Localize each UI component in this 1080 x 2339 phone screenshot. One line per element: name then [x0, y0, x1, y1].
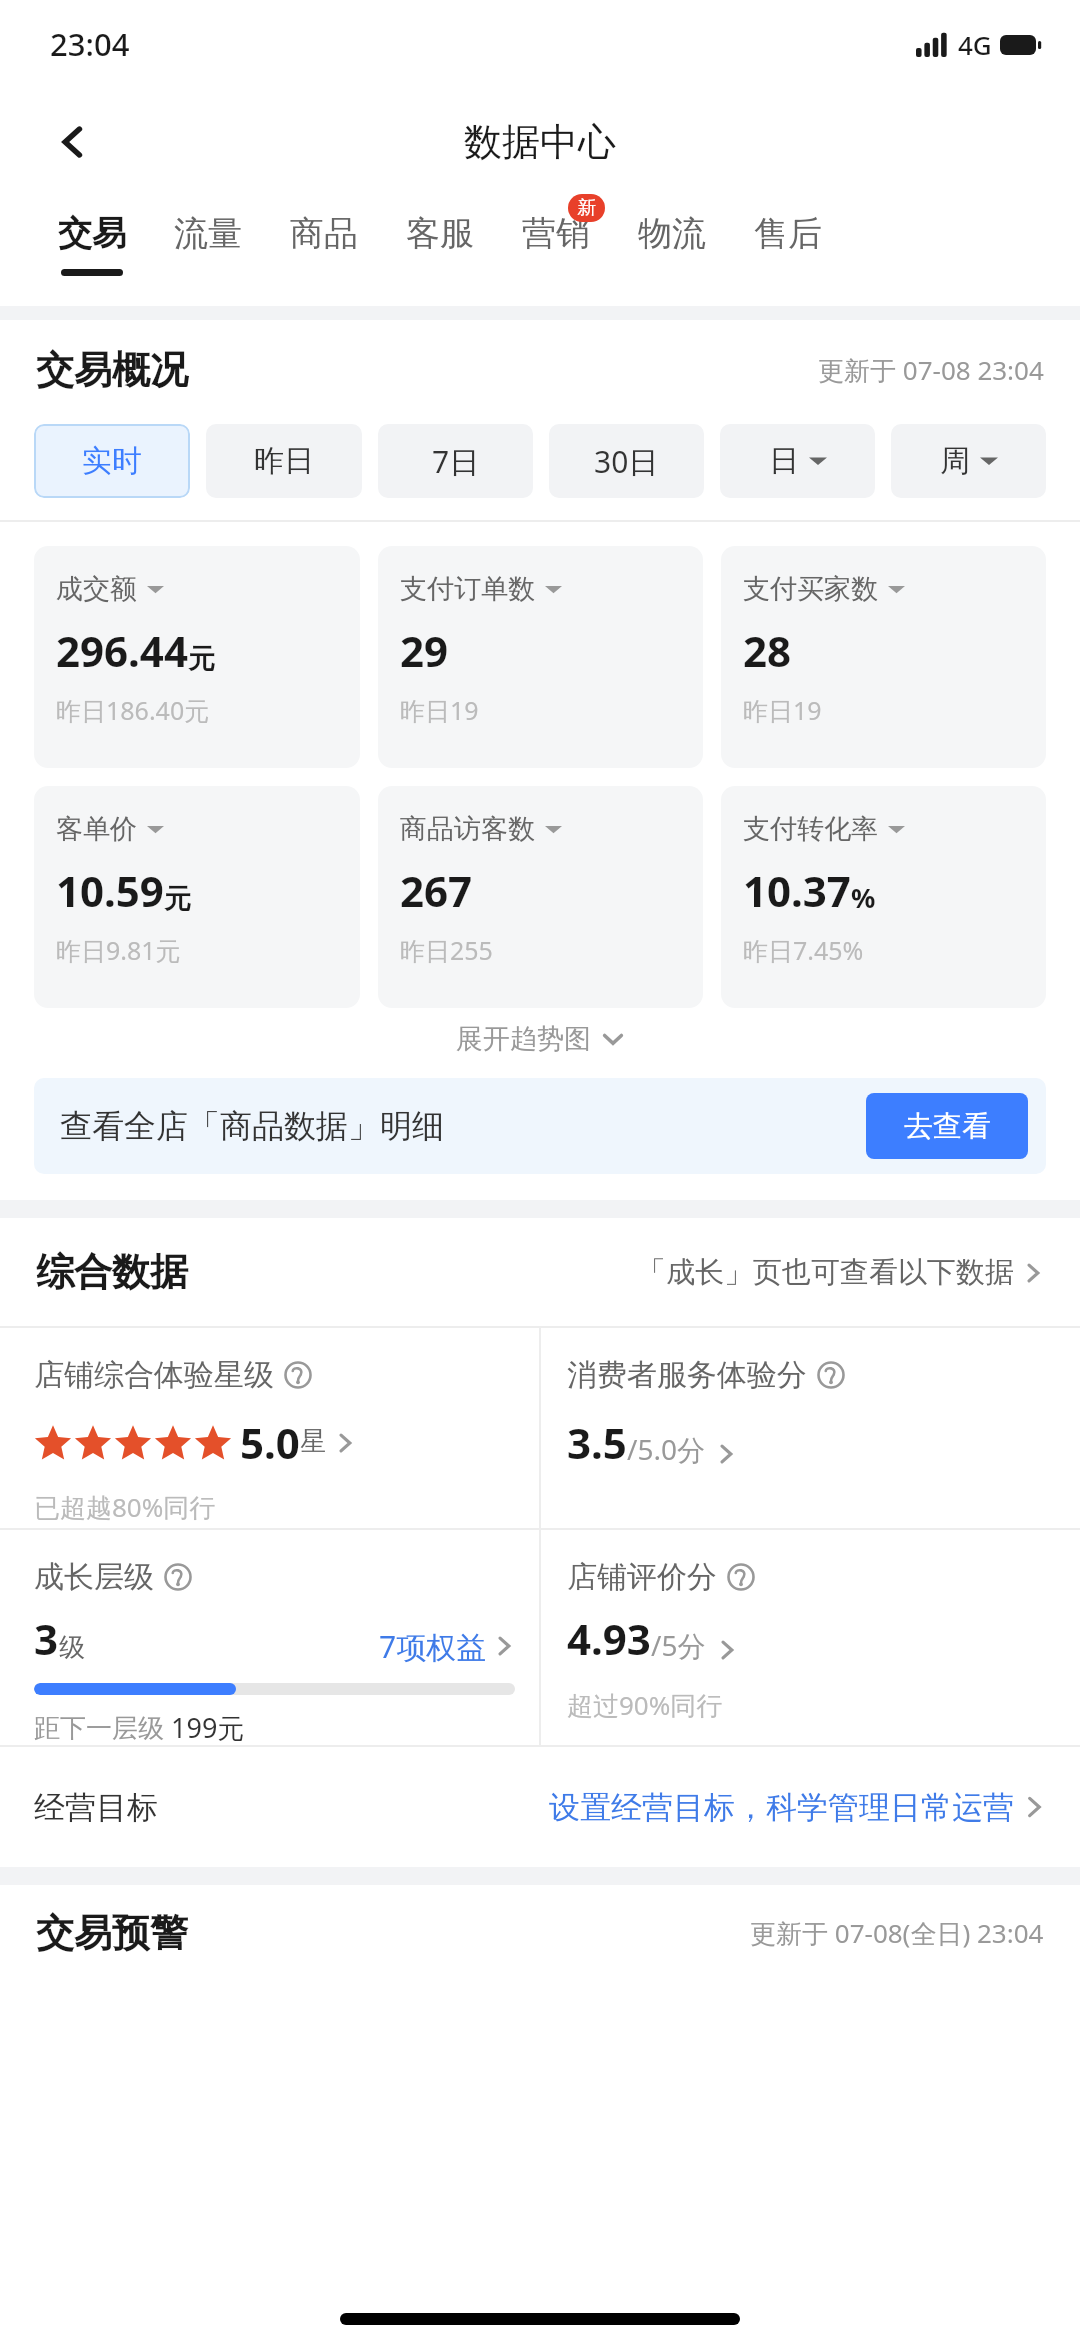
staticText: 昨日255: [400, 933, 493, 967]
button[interactable]: 商品: [266, 196, 382, 306]
staticText: 296.44: [56, 622, 188, 679]
button[interactable]: 消费者服务体验分: [541, 1328, 1080, 1528]
button[interactable]: 昨日: [206, 424, 362, 498]
staticText: 5.0: [240, 1414, 300, 1471]
staticText: 商品访客数: [400, 812, 535, 846]
staticText: 店铺综合体验星级: [34, 1356, 274, 1394]
staticText: 客单价: [56, 812, 137, 846]
staticText: 成长层级: [34, 1558, 154, 1596]
button[interactable]: 经营目标: [0, 1747, 1080, 1867]
staticText: 昨日19: [400, 693, 479, 727]
staticText: 7日: [432, 441, 480, 482]
button[interactable]: 成长层级: [0, 1530, 539, 1745]
staticText: 昨日186.40元: [56, 693, 210, 727]
staticText: 28: [743, 622, 792, 679]
staticText: 日: [769, 442, 799, 480]
button[interactable]: 支付订单数: [378, 546, 703, 768]
button[interactable]: 30日: [549, 424, 704, 498]
button[interactable]: 交易: [34, 196, 150, 306]
staticText: 查看全店「商品数据」明细: [60, 1106, 444, 1146]
staticText: 设置经营目标，科学管理日常运营: [549, 1788, 1014, 1827]
staticText: 去查看: [904, 1108, 991, 1145]
staticText: 昨日: [254, 442, 314, 480]
button[interactable]: 客服: [382, 196, 498, 306]
staticText: 267: [400, 862, 473, 919]
button[interactable]: 「成长」页也可查看以下数据: [637, 1254, 1044, 1291]
staticText: 更新于 07-08(全日) 23:04: [750, 1915, 1044, 1951]
staticText: %: [851, 879, 876, 916]
staticText: 3: [34, 1610, 59, 1667]
button[interactable]: 店铺综合体验星级: [0, 1328, 539, 1528]
staticText: 29: [400, 622, 449, 679]
staticText: 10.37: [743, 862, 851, 919]
staticText: 昨日7.45%: [743, 933, 864, 967]
staticText: 昨日19: [743, 693, 822, 727]
button[interactable]: 7项权益: [379, 1626, 515, 1667]
staticText: 新: [577, 196, 596, 220]
staticText: 昨日9.81元: [56, 933, 181, 967]
button[interactable]: 支付转化率: [721, 786, 1046, 1008]
staticText: 更新于 07-08 23:04: [818, 352, 1044, 388]
button[interactable]: 日: [720, 424, 875, 498]
staticText: 元: [164, 882, 191, 916]
staticText: 消费者服务体验分: [567, 1356, 807, 1394]
staticText: 支付订单数: [400, 572, 535, 606]
button[interactable]: 支付买家数: [721, 546, 1046, 768]
button[interactable]: 客单价: [34, 786, 360, 1008]
staticText: 客服: [406, 212, 474, 255]
staticText: 超过90%同行: [567, 1687, 723, 1723]
button[interactable]: 流量: [150, 196, 266, 306]
staticText: 交易预警: [36, 1909, 188, 1957]
button[interactable]: 售后: [730, 196, 846, 306]
staticText: 展开趋势图: [456, 1022, 591, 1056]
staticText: 数据中心: [464, 118, 616, 166]
staticText: 实时: [82, 442, 142, 480]
staticText: 流量: [174, 212, 242, 255]
staticText: 「成长」页也可查看以下数据: [637, 1254, 1014, 1291]
staticText: 10.59: [56, 862, 164, 919]
staticText: 成交额: [56, 572, 137, 606]
button[interactable]: 去查看: [866, 1093, 1028, 1159]
staticText: 星: [300, 1425, 326, 1458]
button[interactable]: 营销: [498, 196, 614, 306]
button[interactable]: 商品访客数: [378, 786, 703, 1008]
staticText: 30日: [594, 441, 659, 482]
staticText: 交易概况: [36, 346, 188, 394]
staticText: 已超越80%同行: [34, 1489, 216, 1525]
staticText: 4G: [958, 27, 992, 62]
button[interactable]: 物流: [614, 196, 730, 306]
staticText: 级: [59, 1631, 85, 1664]
staticText: 周: [940, 442, 970, 480]
staticText: 营销: [522, 212, 590, 255]
button[interactable]: 周: [891, 424, 1046, 498]
staticText: 售后: [754, 212, 822, 255]
button[interactable]: 成交额: [34, 546, 360, 768]
button[interactable]: 展开趋势图: [0, 1022, 1080, 1056]
staticText: 物流: [638, 212, 706, 255]
staticText: 4.93: [567, 1610, 651, 1667]
staticText: 支付买家数: [743, 572, 878, 606]
staticText: 交易: [58, 212, 126, 255]
button[interactable]: 实时: [34, 424, 190, 498]
staticText: 店铺评价分: [567, 1558, 717, 1596]
staticText: 3.5: [567, 1414, 627, 1471]
staticText: /5.0分: [627, 1430, 705, 1468]
button[interactable]: 查看全店「商品数据」明细: [34, 1078, 1046, 1174]
staticText: 商品: [290, 212, 358, 255]
button[interactable]: Back: [44, 112, 104, 172]
staticText: 7项权益: [379, 1626, 487, 1667]
staticText: 经营目标: [34, 1788, 158, 1827]
button[interactable]: 店铺评价分: [541, 1530, 1080, 1745]
staticText: 综合数据: [36, 1248, 188, 1296]
staticText: 199元: [171, 1709, 245, 1745]
staticText: 支付转化率: [743, 812, 878, 846]
staticText: 元: [188, 642, 215, 676]
staticText: 距下一层级: [34, 1709, 171, 1745]
button[interactable]: 7日: [378, 424, 533, 498]
staticText: /5分: [651, 1626, 706, 1664]
staticText: 23:04: [50, 23, 130, 65]
